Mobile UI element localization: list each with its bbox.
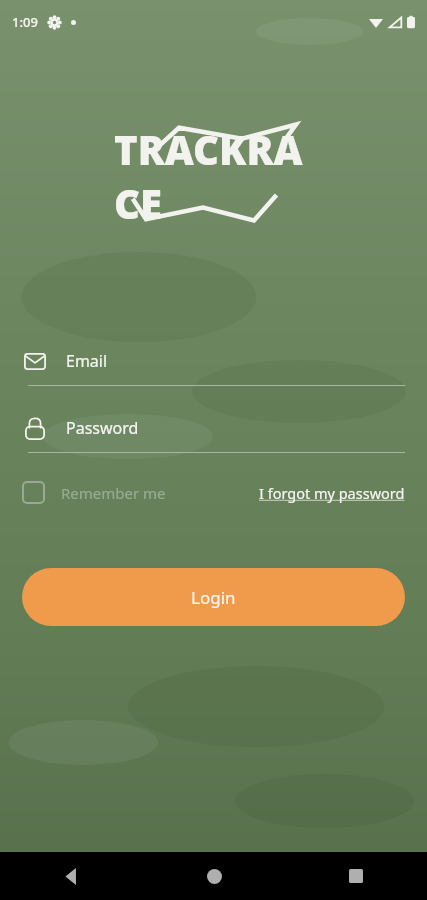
button[interactable]: Recent apps — [285, 852, 427, 900]
button[interactable]: Back — [0, 852, 143, 900]
staticText: Remember me — [61, 483, 166, 503]
button[interactable]: Email — [22, 345, 405, 377]
button[interactable]: I forgot my password — [259, 479, 405, 507]
other: Email — [22, 348, 48, 374]
button[interactable]: Login — [22, 568, 405, 626]
staticText: Password — [66, 417, 139, 439]
button[interactable]: Password — [22, 412, 405, 444]
staticText: TRACKRACE — [114, 122, 314, 227]
other: Password — [22, 415, 48, 441]
staticText: 1:09 — [12, 13, 38, 31]
staticText: I forgot my password — [259, 483, 405, 503]
staticText: Login — [191, 586, 236, 609]
button[interactable]: Remember me — [22, 477, 166, 508]
staticText: Email — [66, 350, 108, 372]
button[interactable]: Home — [143, 852, 285, 900]
